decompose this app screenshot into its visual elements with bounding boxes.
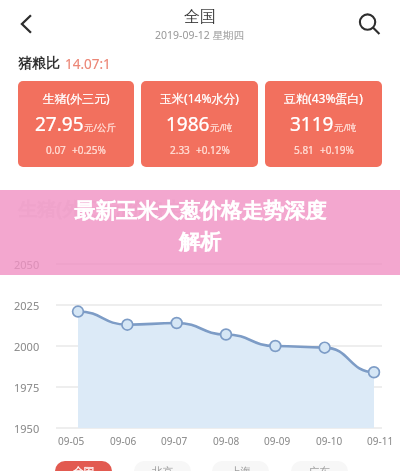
staticText: 广东 (309, 465, 330, 471)
staticText: 玉米(14%水分) (160, 90, 239, 106)
button[interactable]: 豆粕(43%蛋白) (265, 81, 382, 167)
staticText: 5.81 (294, 143, 314, 157)
staticText: 1975 (14, 380, 40, 395)
staticText: 1950 (14, 421, 40, 436)
staticText: 元/吨 (210, 121, 233, 134)
staticText: 北京 (152, 465, 173, 471)
staticText: 3119 (290, 111, 334, 137)
button[interactable]: 北京 (134, 461, 191, 471)
staticText: 猪粮比 (18, 55, 60, 73)
staticText: +0.25% (72, 143, 106, 157)
staticText: 2025 (14, 298, 40, 313)
staticText: 09-11 (367, 434, 394, 448)
staticText: 14.07:1 (65, 55, 111, 73)
staticText: 0.07 (46, 143, 66, 157)
staticText: 09-09 (264, 434, 291, 448)
staticText: 2019-09-12 星期四 (155, 28, 245, 42)
button[interactable]: 生猪(外三元) (18, 81, 134, 167)
staticText: 09-07 (161, 434, 188, 448)
staticText: +0.12% (196, 143, 230, 157)
staticText: 豆粕(43%蛋白) (284, 90, 363, 106)
staticText: 上海 (230, 465, 251, 471)
staticText: 全国 (184, 7, 216, 27)
staticText: +0.19% (320, 143, 354, 157)
button[interactable]: 全国 (55, 461, 112, 471)
button[interactable]: 广东 (291, 461, 348, 471)
button[interactable]: Search (348, 3, 390, 45)
staticText: 09-06 (110, 434, 137, 448)
staticText: 全国 (73, 465, 94, 471)
staticText: 09-10 (316, 434, 343, 448)
button[interactable]: 玉米(14%水分) (141, 81, 258, 167)
staticText: 2050 (14, 257, 40, 272)
staticText: 元/吨 (334, 121, 357, 134)
staticText: 09-08 (213, 434, 240, 448)
staticText: 09-05 (58, 434, 85, 448)
staticText: 生猪(外三元) (42, 90, 110, 106)
button[interactable]: Back (6, 3, 48, 45)
staticText: 生猪(外三元)价格走势 (18, 196, 202, 222)
staticText: 元/公斤 (84, 121, 117, 134)
button[interactable]: 上海 (212, 461, 269, 471)
staticText: 最新玉米大葱价格走势深度 (0, 198, 400, 224)
staticText: 2.33 (170, 143, 190, 157)
staticText: 27.95 (35, 111, 84, 137)
staticText: 解析 (0, 229, 400, 255)
staticText: 1986 (166, 111, 210, 137)
staticText: 2000 (14, 339, 40, 354)
